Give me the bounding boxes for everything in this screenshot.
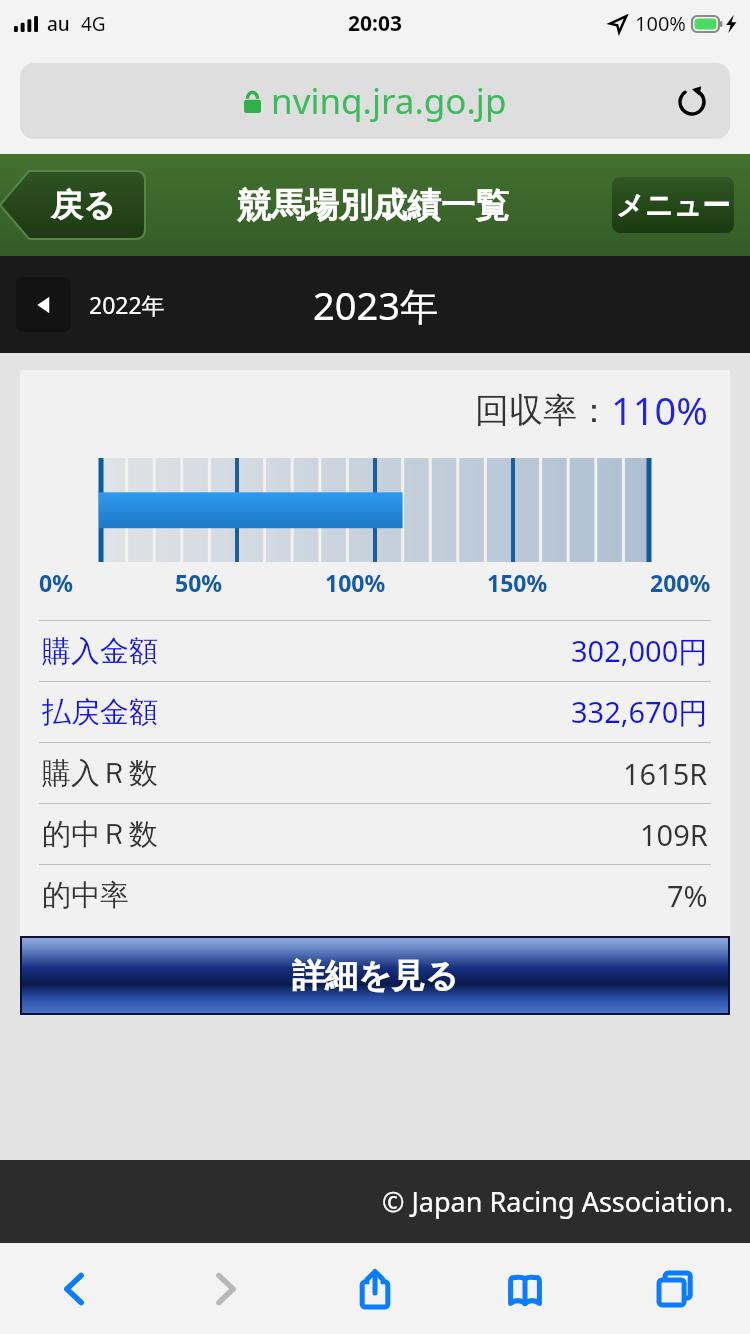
staticText: 20:03 bbox=[348, 9, 402, 38]
staticText: 競馬場別成績一覧 bbox=[237, 184, 509, 227]
staticText: 110% bbox=[611, 384, 708, 436]
staticText: 50% bbox=[175, 567, 223, 598]
staticText: 100% bbox=[635, 10, 686, 37]
button[interactable]: 購入金額 bbox=[39, 621, 711, 681]
button[interactable]: Tabs bbox=[600, 1243, 750, 1334]
staticText: 2023年 bbox=[313, 279, 438, 331]
button[interactable]: 払戻金額 bbox=[39, 682, 711, 742]
button[interactable]: メニュー bbox=[612, 177, 734, 233]
staticText: 的中率 bbox=[42, 877, 129, 914]
staticText: 200% bbox=[650, 567, 711, 598]
staticText: 332,670円 bbox=[571, 692, 708, 732]
staticText: nvinq.jra.go.jp bbox=[271, 77, 507, 125]
other: Previous year bbox=[16, 277, 71, 332]
button[interactable]: Previous year bbox=[16, 277, 165, 332]
staticText: 100% bbox=[325, 567, 386, 598]
staticText: 0% bbox=[39, 567, 73, 598]
staticText: 詳細を見る bbox=[292, 955, 459, 997]
staticText: 109R bbox=[640, 815, 708, 854]
button[interactable]: Reload bbox=[670, 79, 714, 123]
staticText: 302,000円 bbox=[571, 631, 708, 671]
button[interactable]: Back bbox=[0, 1243, 150, 1334]
staticText: © Japan Racing Association. bbox=[382, 1183, 734, 1220]
staticText: 2022年 bbox=[89, 289, 165, 320]
staticText: 7% bbox=[667, 876, 708, 915]
staticText: 1615R bbox=[623, 754, 708, 793]
staticText: 戻る bbox=[51, 185, 116, 225]
button[interactable]: 戻る bbox=[0, 171, 145, 239]
staticText: 払戻金額 bbox=[42, 694, 158, 731]
staticText: 4G bbox=[81, 11, 106, 37]
staticText: メニュー bbox=[616, 188, 730, 223]
button[interactable]: Bookmarks bbox=[450, 1243, 600, 1334]
staticText: 的中Ｒ数 bbox=[42, 816, 158, 853]
button[interactable]: 詳細を見る bbox=[22, 938, 728, 1013]
button[interactable]: Forward bbox=[150, 1243, 300, 1334]
staticText: 回収率： bbox=[475, 389, 611, 432]
staticText: 購入Ｒ数 bbox=[42, 755, 158, 792]
staticText: 購入金額 bbox=[42, 633, 158, 670]
staticText: au bbox=[47, 11, 70, 37]
button[interactable]: Share bbox=[300, 1243, 450, 1334]
staticText: 150% bbox=[487, 567, 548, 598]
button[interactable]: nvinq.jra.go.jp bbox=[20, 63, 730, 139]
